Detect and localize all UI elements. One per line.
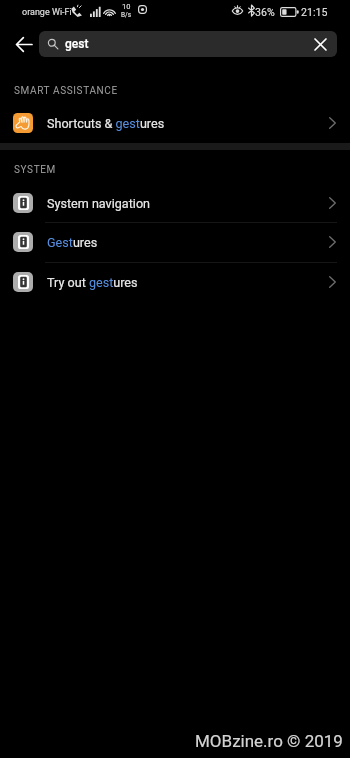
staticText: 21:15 [301, 6, 328, 18]
staticText: Shortcuts & gestures [47, 116, 165, 131]
staticText: Gestures [47, 235, 98, 250]
staticText: 36% [255, 6, 275, 18]
staticText: MOBzine.ro © 2019 [195, 731, 343, 751]
button[interactable]: Clear search [305, 31, 335, 57]
button[interactable]: System navigation [0, 183, 350, 223]
button[interactable]: gest [39, 31, 337, 57]
staticText: SYSTEM [14, 164, 56, 176]
staticText: SMART ASSISTANCE [14, 85, 118, 97]
staticText: System navigation [47, 196, 151, 211]
button[interactable]: Try out gestures [0, 262, 350, 302]
staticText: B/s [121, 11, 132, 19]
button[interactable]: Back [4, 25, 43, 64]
staticText: Try out gestures [47, 275, 138, 290]
staticText: 10 [122, 2, 131, 11]
button[interactable]: Gestures [0, 222, 350, 262]
button[interactable]: Shortcuts & gestures [0, 103, 350, 143]
staticText: gest [65, 37, 89, 51]
staticText: orange Wi-Fi [22, 7, 72, 18]
